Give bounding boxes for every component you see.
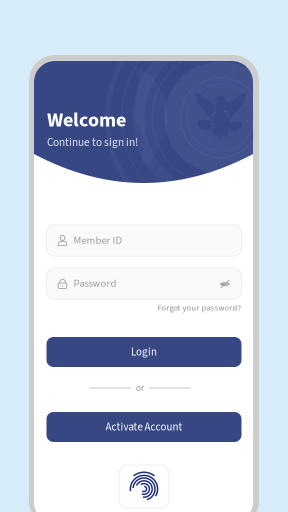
button[interactable]: Sign in with fingerprint bbox=[119, 465, 169, 508]
button[interactable]: Activate Account bbox=[46, 412, 241, 442]
staticText: Continue to sign in! bbox=[47, 134, 138, 151]
staticText: Activate Account bbox=[105, 419, 182, 435]
button[interactable]: Password bbox=[46, 268, 241, 299]
staticText: Forgot your password? bbox=[157, 302, 241, 314]
button[interactable]: Member ID bbox=[46, 225, 241, 256]
staticText: or bbox=[136, 381, 144, 395]
staticText: Login bbox=[131, 344, 157, 360]
button[interactable]: Forgot your password? bbox=[46, 302, 241, 314]
staticText: Password bbox=[73, 276, 116, 291]
button[interactable]: Login bbox=[46, 337, 241, 367]
staticText: Welcome bbox=[47, 106, 126, 134]
staticText: Member ID bbox=[73, 233, 122, 248]
